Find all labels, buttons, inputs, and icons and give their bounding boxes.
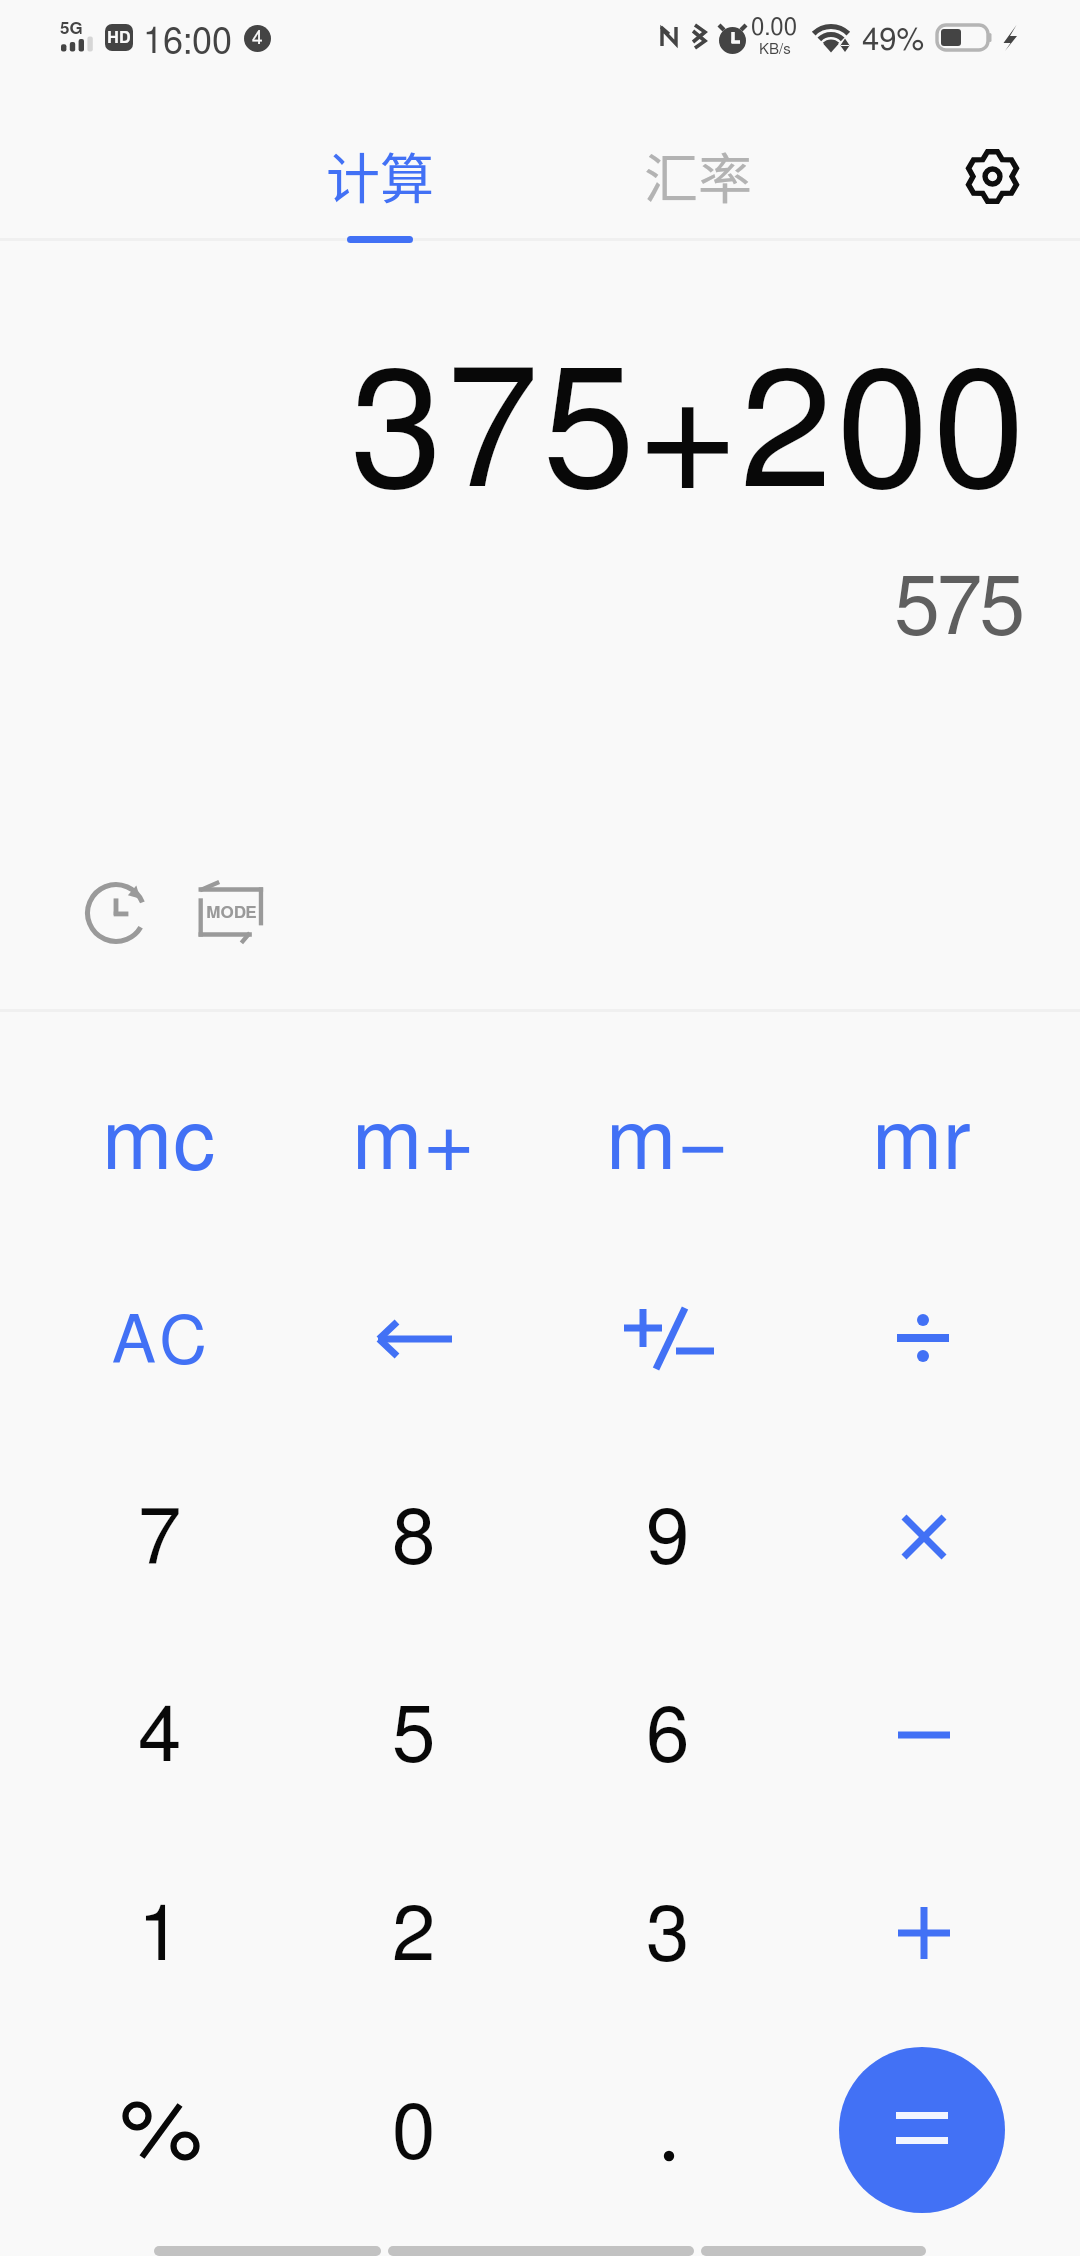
staticText: 0 (392, 2096, 436, 2174)
staticText: 49% (862, 25, 925, 56)
button[interactable]: Percent (33, 2036, 287, 2234)
staticText: 7 (138, 1501, 182, 1579)
staticText: HD (107, 30, 131, 46)
button[interactable]: mr (795, 1045, 1049, 1243)
staticText: 0.00 (751, 16, 798, 40)
staticText: 5 (392, 1699, 436, 1777)
button[interactable]: mc (33, 1045, 287, 1243)
button[interactable]: Equals (839, 2047, 1005, 2213)
staticText: 575 (0, 568, 1022, 650)
staticText: 1 (138, 1898, 182, 1976)
button[interactable]: 1 (33, 1838, 287, 2036)
staticText: m− (607, 1102, 731, 1186)
staticText: 375+200 (0, 353, 1029, 519)
staticText: 3 (646, 1898, 690, 1976)
staticText: KB/s (759, 42, 791, 57)
staticText: mr (873, 1102, 975, 1186)
staticText: mc (103, 1102, 219, 1186)
staticText: 8 (392, 1501, 436, 1579)
button[interactable]: 9 (541, 1441, 795, 1639)
button[interactable]: 4 (33, 1639, 287, 1837)
button[interactable]: AC (33, 1243, 287, 1441)
staticText: 6 (646, 1699, 690, 1777)
staticText: 5G (60, 20, 83, 37)
button[interactable]: Minus (795, 1639, 1049, 1837)
button[interactable]: Settings (932, 116, 1052, 236)
button[interactable]: m− (541, 1045, 795, 1243)
staticText: 2 (392, 1898, 436, 1976)
button[interactable]: 6 (541, 1639, 795, 1837)
staticText: 4 (252, 29, 263, 48)
staticText: 9 (646, 1501, 690, 1579)
staticText: AC (112, 1310, 212, 1376)
button[interactable]: 计算 (254, 80, 506, 243)
button[interactable]: 0 (287, 2036, 541, 2234)
button[interactable]: Decimal point (541, 2036, 795, 2234)
button[interactable]: Plus (795, 1838, 1049, 2036)
button[interactable]: Plus minus (541, 1243, 795, 1441)
button[interactable]: Backspace (287, 1243, 541, 1441)
staticText: 计算 (326, 136, 434, 214)
staticText: 4 (138, 1699, 182, 1777)
button[interactable]: 2 (287, 1838, 541, 2036)
button[interactable]: 汇率 (572, 80, 824, 243)
button[interactable]: Mode (170, 852, 290, 972)
button[interactable]: 3 (541, 1838, 795, 2036)
staticText: MODE (206, 904, 257, 921)
button[interactable]: History (56, 853, 176, 973)
button[interactable]: Multiply (795, 1441, 1049, 1639)
button[interactable]: 7 (33, 1441, 287, 1639)
staticText: m+ (353, 1102, 477, 1186)
staticText: 汇率 (644, 136, 752, 214)
button[interactable]: m+ (287, 1045, 541, 1243)
staticText: 16:00 (143, 24, 233, 60)
button[interactable]: 5 (287, 1639, 541, 1837)
button[interactable]: Divide (795, 1243, 1049, 1441)
button[interactable]: 8 (287, 1441, 541, 1639)
